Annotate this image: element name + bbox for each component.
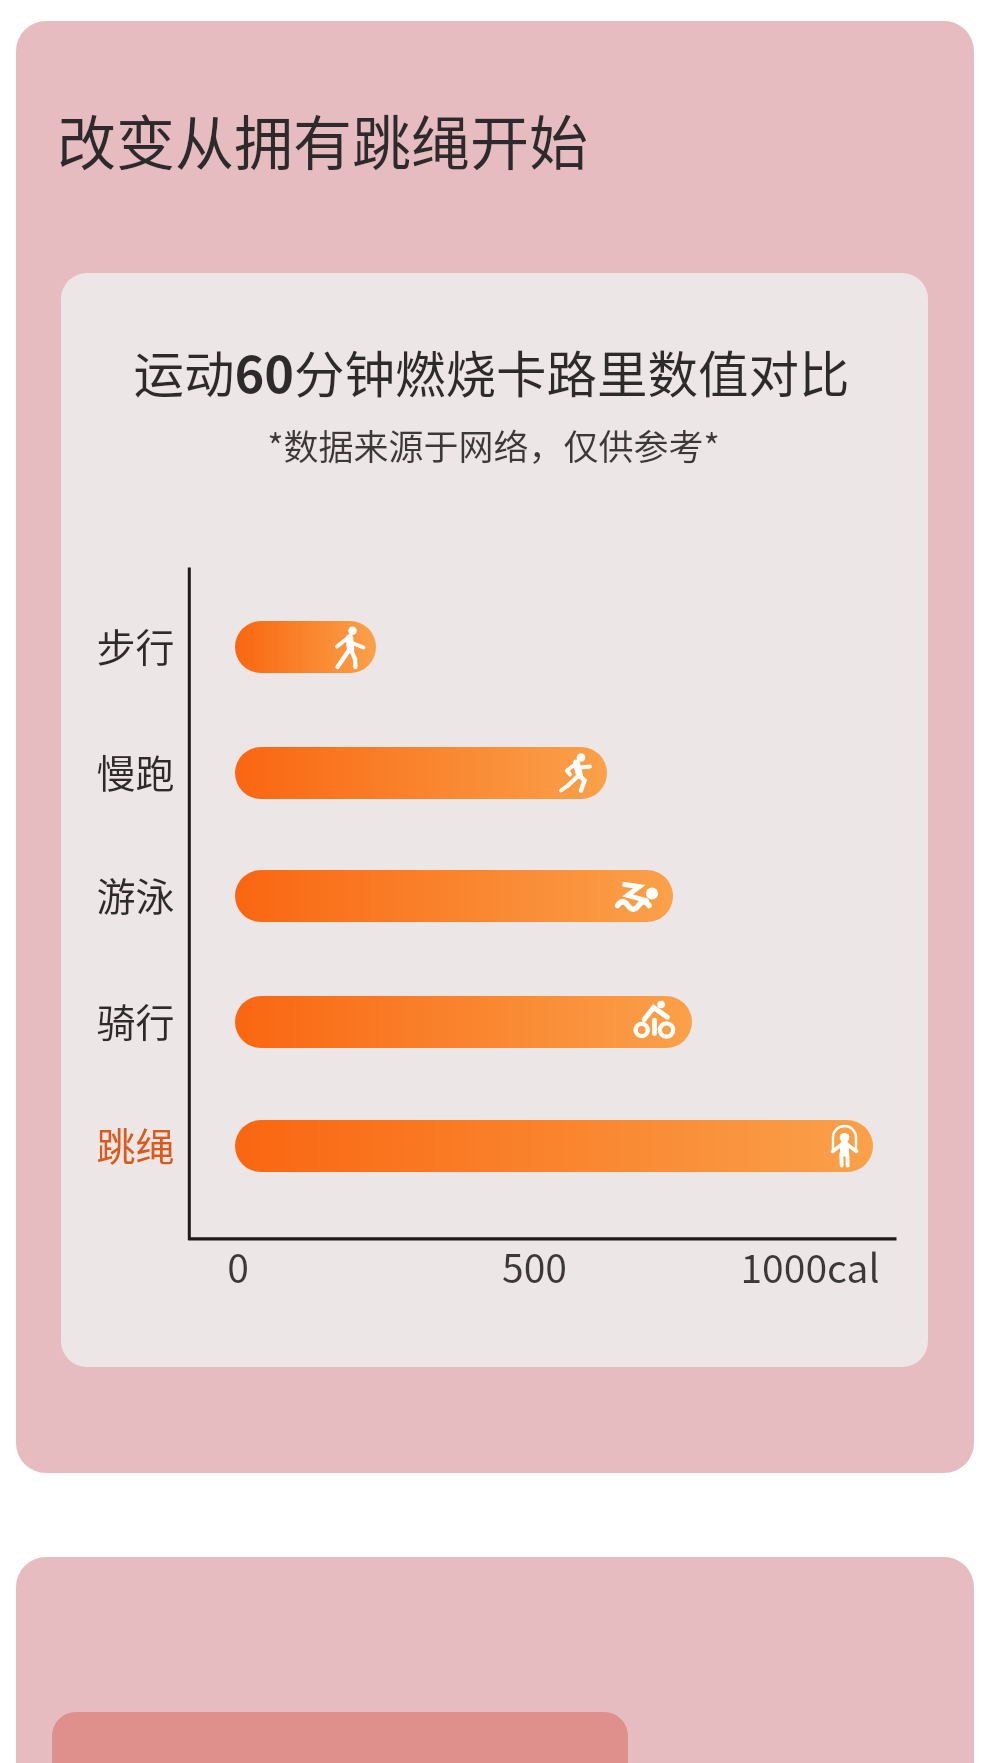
button[interactable]: 跳绳 约1000卡 xyxy=(90,1101,910,1191)
staticText: 游泳 xyxy=(96,866,175,922)
button[interactable]: 游泳 约740卡 xyxy=(90,851,910,941)
button[interactable]: 骑行 约775卡 xyxy=(90,977,910,1067)
staticText: 运动60分钟燃烧卡路里数值对比 xyxy=(133,334,850,407)
staticText: 500 xyxy=(502,1238,567,1294)
button[interactable] xyxy=(16,1557,974,1763)
button[interactable]: 步行 约230卡 xyxy=(90,602,910,692)
staticText: 改变从拥有跳绳开始 xyxy=(57,97,589,182)
staticText: 骑行 xyxy=(96,992,175,1048)
staticText: 步行 xyxy=(96,617,175,673)
staticText: 慢跑 xyxy=(96,743,175,799)
button[interactable] xyxy=(61,273,928,1367)
button[interactable] xyxy=(52,1712,628,1763)
button[interactable] xyxy=(16,21,974,1473)
staticText: 1000cal xyxy=(740,1238,880,1294)
staticText: 跳绳 xyxy=(96,1116,175,1172)
staticText: *数据来源于网络，仅供参考* xyxy=(267,419,720,470)
button[interactable]: 慢跑 约630卡 xyxy=(90,728,910,818)
staticText: 0 xyxy=(227,1238,249,1294)
